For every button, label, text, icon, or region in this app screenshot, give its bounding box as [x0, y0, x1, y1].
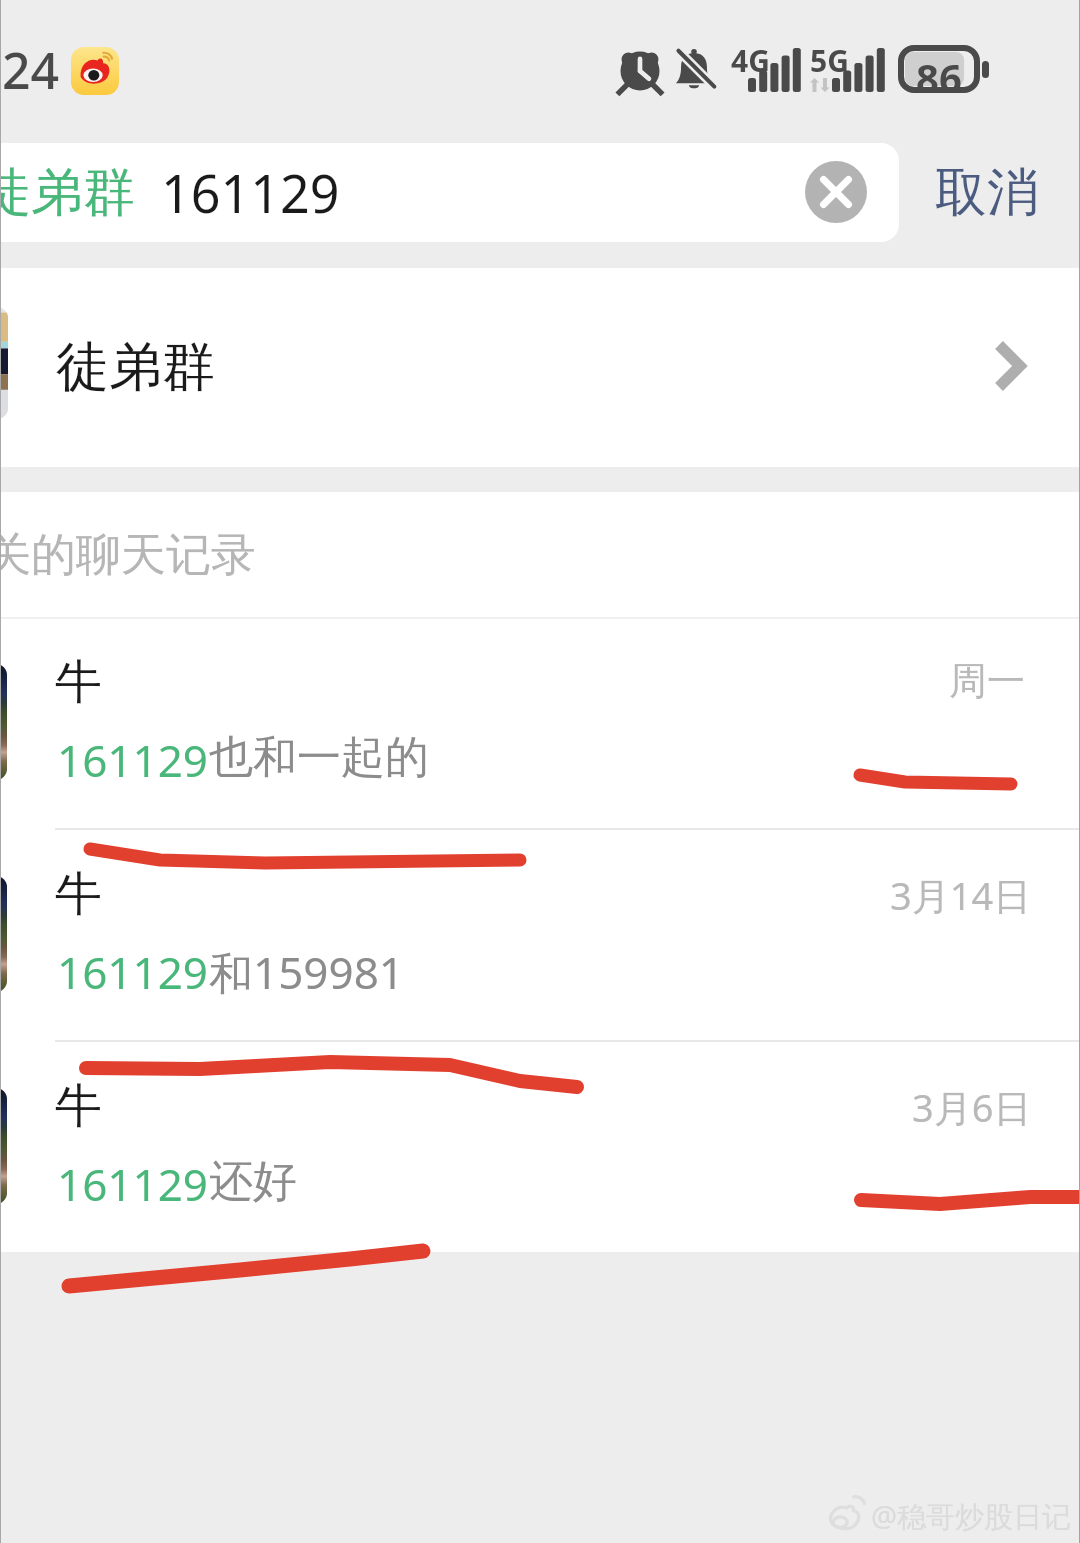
staticText: 3月14日: [890, 869, 1032, 921]
staticText: 24: [2, 36, 60, 104]
button[interactable]: 牛: [0, 618, 1080, 830]
staticText: 徒弟群: [0, 160, 135, 226]
button[interactable]: 徒弟群: [0, 143, 899, 242]
staticText: 和159981: [209, 942, 405, 1002]
staticText: 牛: [55, 865, 102, 924]
staticText: 还好: [209, 1154, 297, 1209]
staticText: 3月6日: [912, 1081, 1032, 1133]
staticText: 徒弟群: [56, 334, 215, 401]
staticText: @稳哥炒股日记: [871, 1496, 1072, 1536]
button[interactable]: 徒弟群: [0, 268, 1080, 467]
staticText: 86: [916, 50, 962, 104]
staticText: 4G: [731, 40, 770, 81]
staticText: 牛: [55, 653, 102, 712]
button[interactable]: 牛: [0, 830, 1080, 1042]
button[interactable]: 取消: [912, 130, 1062, 255]
staticText: 161129: [161, 157, 340, 228]
staticText: 牛: [55, 1077, 102, 1136]
other: Open chat: [990, 336, 1038, 384]
button[interactable]: Clear search text: [805, 161, 867, 223]
button[interactable]: 牛: [0, 1042, 1080, 1254]
staticText: 与徒弟群相关的聊天记录: [0, 527, 256, 584]
staticText: 161129: [57, 942, 209, 1002]
staticText: 也和一起的: [209, 730, 429, 785]
staticText: 取消: [935, 160, 1039, 226]
staticText: 161129: [57, 1154, 209, 1214]
staticText: 161129: [57, 730, 209, 790]
staticText: 5G: [810, 40, 849, 81]
staticText: 周一: [949, 657, 1025, 705]
